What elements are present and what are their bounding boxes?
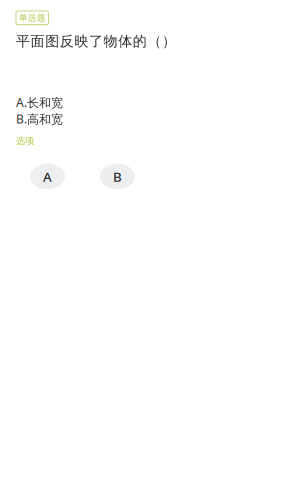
staticText: 单选题 bbox=[19, 12, 46, 23]
button[interactable]: 选项 B bbox=[100, 164, 135, 189]
staticText: 选项 bbox=[16, 135, 34, 147]
staticText: B.高和宽 bbox=[16, 111, 63, 127]
staticText: A bbox=[43, 167, 52, 186]
staticText: B bbox=[113, 167, 122, 186]
staticText: A.长和宽 bbox=[16, 94, 63, 111]
staticText: 平面图反映了物体的（） bbox=[16, 33, 176, 50]
button[interactable]: 选项 A bbox=[30, 164, 65, 189]
